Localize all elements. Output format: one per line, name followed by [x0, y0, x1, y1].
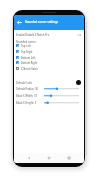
- button[interactable]: Default Color: [16, 79, 82, 84]
- staticText: Black X Width: 10: [16, 94, 37, 98]
- button[interactable]: Back: [24, 153, 34, 163]
- button[interactable]: Black X Width: 10: [16, 93, 82, 99]
- button[interactable]: Rounded corner: [16, 38, 82, 43]
- button[interactable]: Black X Height: 5: [16, 100, 82, 106]
- button[interactable]: Bottom Left: [16, 55, 82, 60]
- staticText: Top Left: [21, 44, 31, 48]
- button[interactable]: Pick default colour: [76, 80, 81, 85]
- staticText: Rounded corner settings: [25, 20, 59, 24]
- button[interactable]: Enable X Notch Pro: [77, 33, 81, 36]
- button[interactable]: Top Right: [16, 49, 82, 54]
- button[interactable]: Home: [44, 153, 54, 163]
- button[interactable]: Enable/Disable X Notch Pro: [16, 31, 82, 36]
- staticText: Default Radius: 50: [16, 87, 39, 91]
- button[interactable]: Default Radius: 50: [16, 86, 82, 92]
- button[interactable]: Top Left: [16, 43, 82, 48]
- staticText: Bottom Right: [21, 61, 38, 65]
- staticText: Top Right: [21, 50, 33, 54]
- button[interactable]: X Notch Value: [16, 66, 82, 71]
- staticText: Black X Height: 5: [16, 101, 37, 105]
- button[interactable]: Back: [15, 18, 23, 26]
- staticText: Default Color: [16, 81, 33, 85]
- staticText: Enable/Disable X Notch Pro: [16, 33, 50, 37]
- button[interactable]: Recents: [64, 153, 74, 163]
- staticText: X Notch Value: [21, 67, 38, 71]
- staticText: Rounded corner: [16, 40, 36, 44]
- button[interactable]: Bottom Right: [16, 60, 82, 65]
- staticText: Bottom Left: [21, 56, 36, 60]
